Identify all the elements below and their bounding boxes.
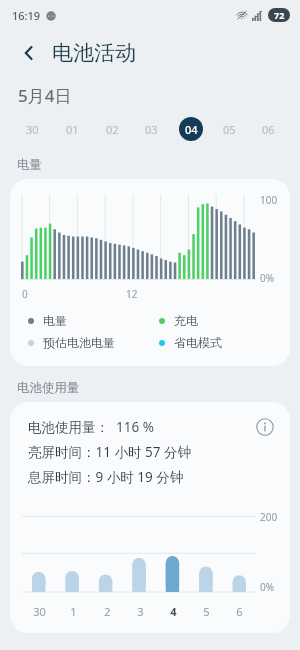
staticText: 5	[203, 604, 210, 619]
staticText: 0	[22, 287, 28, 301]
staticText: 03	[145, 122, 158, 137]
staticText: 02	[106, 122, 119, 137]
staticText: 电池使用量： 116 %	[28, 418, 154, 436]
staticText: 预估电池电量	[43, 335, 115, 350]
staticText: 200	[260, 510, 278, 524]
button[interactable]: Info	[254, 416, 276, 438]
staticText: 亮屏时间：11 小时 57 分钟	[28, 443, 191, 461]
staticText: 30	[33, 604, 46, 619]
staticText: 电池使用量	[17, 380, 80, 396]
staticText: 05	[223, 122, 236, 137]
staticText: 01	[66, 122, 79, 137]
staticText: 3	[137, 604, 144, 619]
staticText: 0%	[260, 271, 275, 285]
staticText: 72	[274, 9, 285, 21]
staticText: 息屏时间：9 小时 19 分钟	[28, 468, 184, 486]
staticText: 充电	[174, 313, 198, 328]
staticText: 电量	[17, 157, 42, 173]
button[interactable]: 30	[12, 111, 52, 147]
staticText: 04	[185, 122, 198, 137]
staticText: 5月4日	[18, 84, 72, 107]
button[interactable]: 电池使用量： 116 %	[10, 402, 290, 633]
button[interactable]: 06	[249, 111, 288, 147]
staticText: 电池活动	[52, 40, 136, 66]
button[interactable]: 02	[92, 111, 132, 147]
button[interactable]: 04	[171, 111, 210, 147]
button[interactable]: 100	[10, 179, 290, 366]
staticText: 电量	[43, 313, 67, 328]
button[interactable]: Back	[14, 38, 44, 68]
staticText: 2	[104, 604, 111, 619]
button[interactable]: 03	[132, 111, 171, 147]
button[interactable]: 01	[52, 111, 92, 147]
staticText: 省电模式	[174, 335, 222, 350]
staticText: 12	[126, 287, 138, 301]
staticText: 06	[262, 122, 275, 137]
staticText: 16:19	[12, 8, 41, 23]
staticText: 1	[70, 604, 77, 619]
staticText: 100	[260, 193, 278, 207]
staticText: 6	[236, 604, 243, 619]
staticText: 4	[170, 604, 177, 619]
staticText: 30	[26, 122, 39, 137]
staticText: 0%	[260, 580, 275, 594]
button[interactable]: 05	[210, 111, 249, 147]
